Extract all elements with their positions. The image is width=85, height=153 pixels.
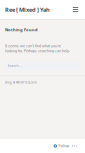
button[interactable]: More options xyxy=(69,141,80,150)
button[interactable]: Blog at WordPress.com. xyxy=(5,81,37,84)
staticText: It seems we can't find what you're looki… xyxy=(5,43,70,53)
button[interactable]: Ree [ Mixed ] Yah xyxy=(5,6,50,13)
staticText: Ree [ Mixed ] Yah xyxy=(5,6,50,13)
staticText: Search … xyxy=(7,64,22,68)
button[interactable]: Follow xyxy=(54,144,69,148)
button[interactable]: Search … xyxy=(5,61,80,70)
staticText: Nothing Found xyxy=(5,27,38,32)
button[interactable]: Menu xyxy=(70,3,81,15)
staticText: Follow xyxy=(58,144,69,148)
staticText: Blog at WordPress.com. xyxy=(5,81,37,84)
